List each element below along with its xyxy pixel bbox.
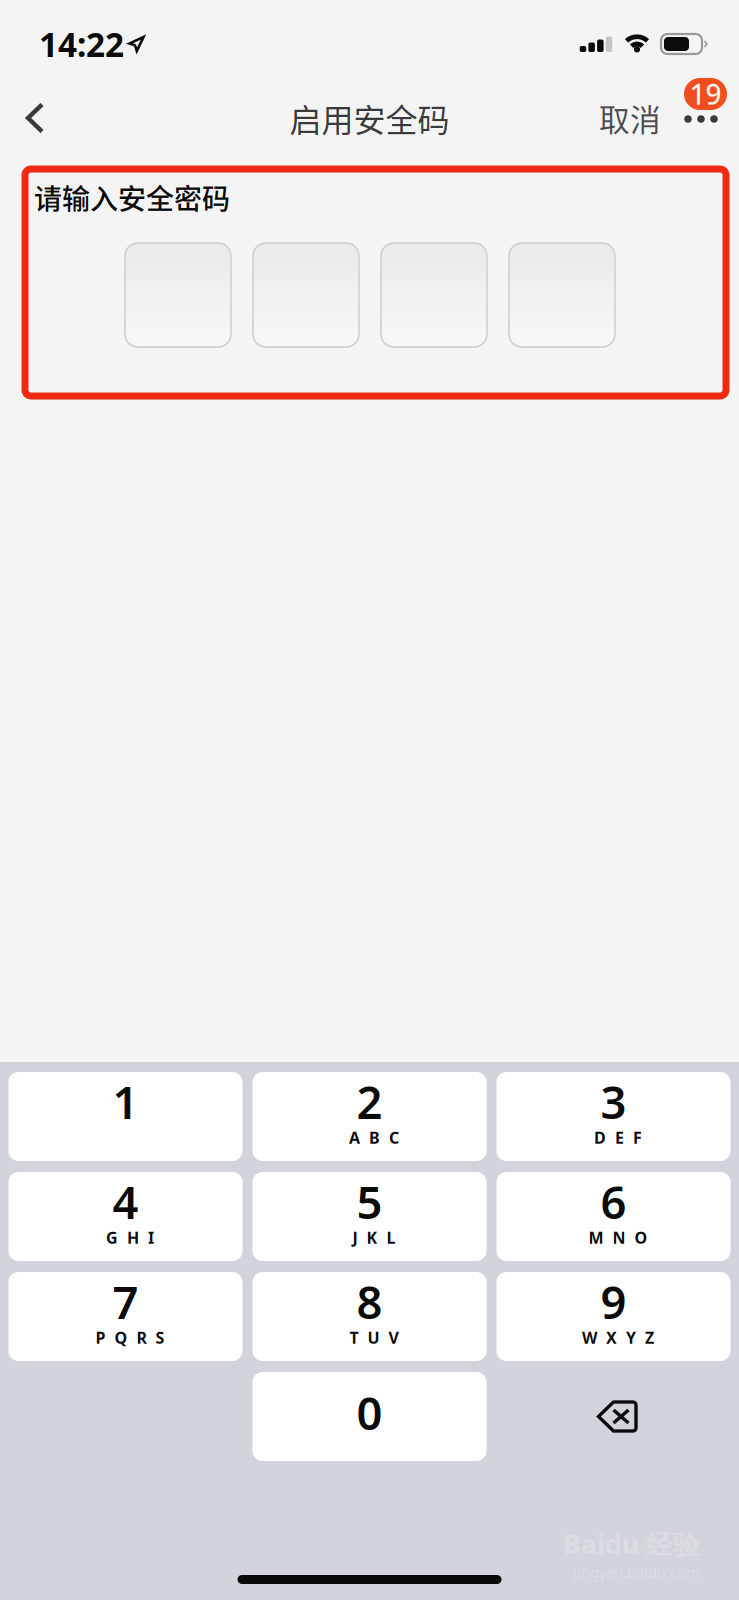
button[interactable]: Back: [4, 88, 66, 148]
staticText: 请输入安全密码: [34, 177, 230, 217]
staticText: PQRS: [95, 1327, 164, 1348]
staticText: 0: [356, 1382, 382, 1443]
staticText: 8: [356, 1271, 382, 1332]
staticText: 4: [112, 1171, 138, 1232]
staticText: MNO: [588, 1227, 647, 1248]
staticText: Baidu 经验: [563, 1526, 700, 1562]
button[interactable]: 9: [496, 1272, 730, 1361]
staticText: 启用安全码: [289, 95, 449, 141]
button[interactable]: 0: [252, 1372, 486, 1461]
staticText: 19: [689, 75, 721, 113]
button[interactable]: 5: [252, 1172, 486, 1261]
staticText: TUV: [349, 1327, 398, 1348]
staticText: 1: [112, 1071, 138, 1132]
staticText: ABC: [349, 1127, 399, 1148]
button[interactable]: 2: [252, 1072, 486, 1161]
button[interactable]: More options: [669, 88, 731, 148]
staticText: 7: [112, 1271, 138, 1332]
button[interactable]: 6: [496, 1172, 730, 1261]
button[interactable]: 1: [8, 1072, 242, 1161]
staticText: 14:22: [39, 22, 124, 66]
staticText: 取消: [599, 96, 661, 140]
button[interactable]: 7: [8, 1272, 242, 1361]
button[interactable]: Delete: [496, 1372, 730, 1461]
staticText: WXYZ: [582, 1327, 654, 1348]
button[interactable]: 取消: [591, 88, 669, 148]
button[interactable]: 8: [252, 1272, 486, 1361]
button[interactable]: 3: [496, 1072, 730, 1161]
staticText: 3: [600, 1071, 626, 1132]
staticText: 6: [600, 1171, 626, 1232]
staticText: 5: [356, 1171, 382, 1232]
staticText: 9: [600, 1271, 626, 1332]
staticText: DEF: [594, 1127, 642, 1148]
staticText: JKL: [352, 1227, 395, 1248]
button[interactable]: 4: [8, 1172, 242, 1261]
staticText: 2: [356, 1071, 382, 1132]
staticText: GHI: [106, 1227, 154, 1248]
